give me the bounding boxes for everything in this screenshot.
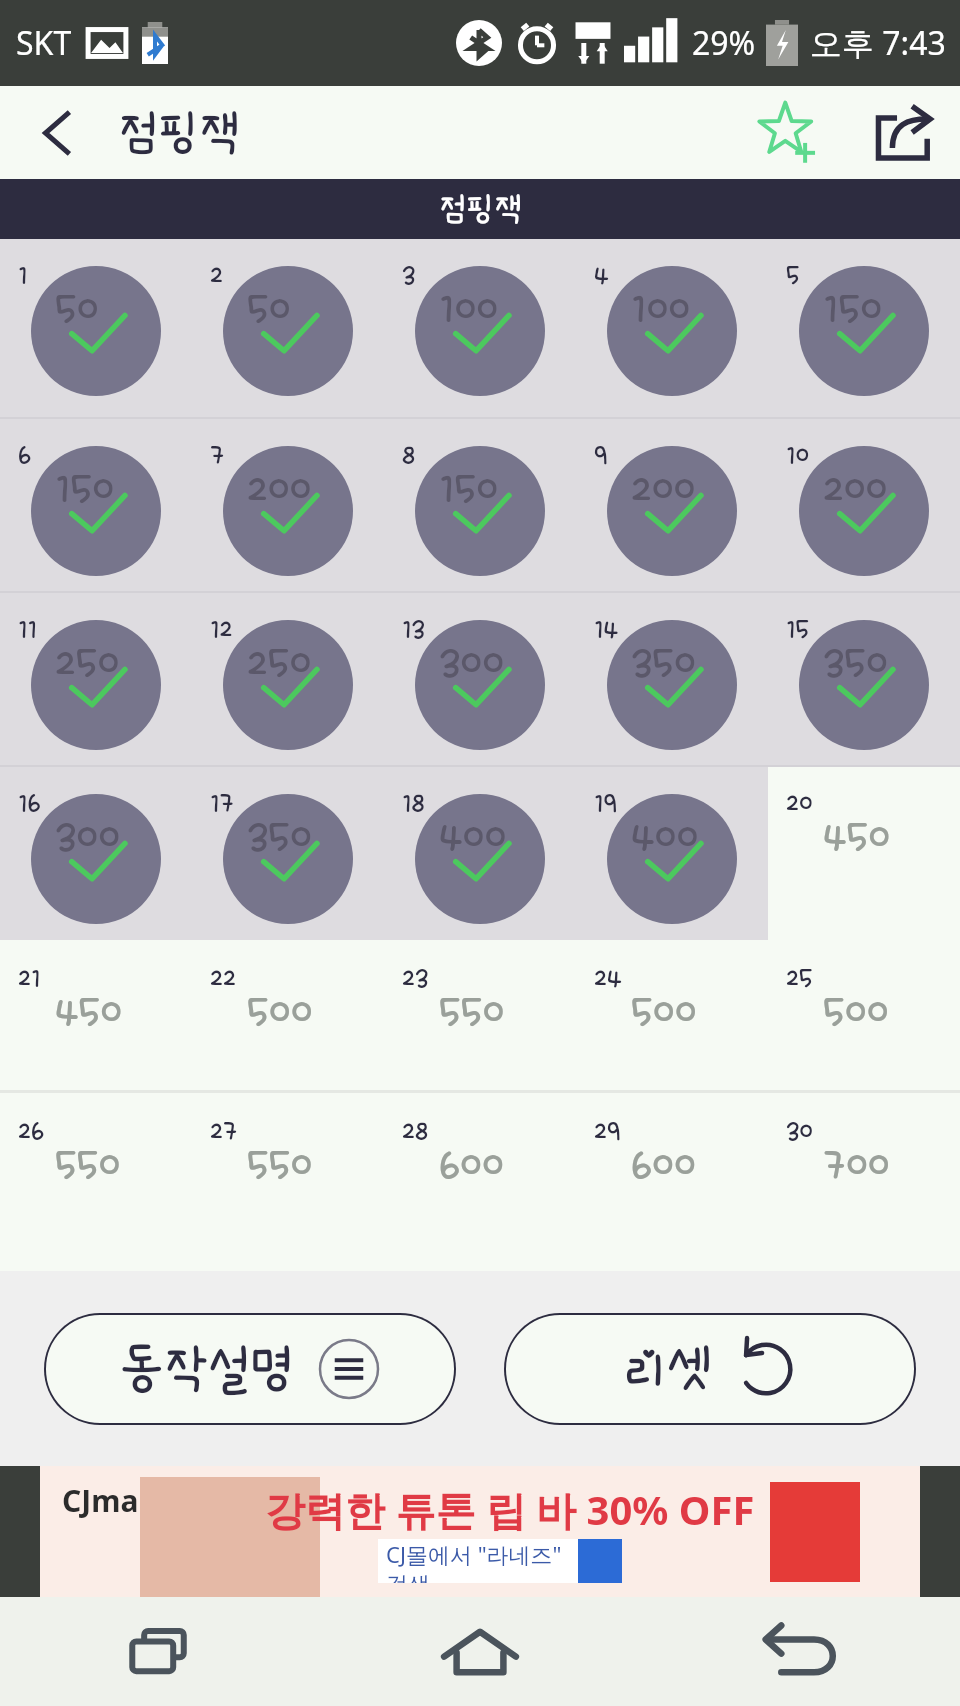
button[interactable]: 13	[384, 593, 576, 765]
button[interactable]: 15	[768, 593, 960, 765]
button[interactable]: 19	[576, 767, 768, 940]
button[interactable]: 14	[576, 593, 768, 765]
staticText: 23	[402, 964, 429, 994]
staticText: 28	[402, 1117, 429, 1147]
staticText: 점핑잭	[439, 192, 522, 226]
button[interactable]: 1	[0, 239, 192, 417]
staticText: 8	[402, 441, 416, 471]
staticText: 9	[594, 441, 608, 471]
button[interactable]: 12	[192, 593, 384, 765]
staticText: 24	[594, 964, 622, 994]
staticText: 700	[823, 1141, 890, 1189]
staticText: 7	[210, 441, 225, 471]
button[interactable]: 17	[192, 767, 384, 940]
staticText: 29	[594, 1117, 621, 1147]
staticText: 27	[210, 1117, 238, 1147]
staticText: 400	[439, 813, 507, 861]
staticText: 15	[786, 615, 810, 645]
staticText: 300	[55, 813, 121, 861]
staticText: 350	[247, 813, 312, 861]
button[interactable]: 4	[576, 239, 768, 417]
staticText: CJmall	[62, 1480, 157, 1521]
staticText: 350	[823, 639, 888, 687]
button[interactable]: 20	[768, 767, 960, 940]
button[interactable]: 2	[192, 239, 384, 417]
button[interactable]: 18	[384, 767, 576, 940]
button[interactable]: 리셋	[504, 1313, 916, 1425]
button[interactable]: 21	[0, 940, 192, 1090]
staticText: 200	[823, 465, 888, 513]
button[interactable]: 6	[0, 419, 192, 591]
staticText: 2	[210, 261, 223, 291]
staticText: 30	[786, 1117, 813, 1147]
staticText: 11	[18, 615, 38, 645]
staticText: 100	[439, 285, 499, 333]
staticText: 리셋	[623, 1342, 710, 1396]
staticText: 14	[594, 615, 619, 645]
staticText: 450	[55, 988, 123, 1036]
staticText: 350	[631, 639, 696, 687]
staticText: 3	[402, 261, 416, 291]
button[interactable]: 30	[768, 1093, 960, 1271]
staticText: 500	[631, 988, 697, 1036]
staticText: 150	[823, 285, 883, 333]
staticText: 500	[823, 988, 889, 1036]
staticText: 550	[439, 988, 505, 1036]
staticText: 22	[210, 964, 236, 994]
button[interactable]: 8	[384, 419, 576, 591]
staticText: 20	[786, 789, 813, 819]
staticText: 동작설명	[120, 1342, 294, 1396]
button[interactable]: Back	[0, 86, 118, 179]
staticText: 100	[631, 285, 691, 333]
staticText: 400	[631, 813, 699, 861]
staticText: 600	[631, 1141, 696, 1189]
button[interactable]: Home	[320, 1597, 640, 1706]
staticText: 26	[18, 1117, 45, 1147]
staticText: SKT	[16, 21, 72, 65]
staticText: 450	[823, 813, 891, 861]
button[interactable]: 29	[576, 1093, 768, 1271]
staticText: 13	[402, 615, 425, 645]
button[interactable]: 동작설명	[44, 1313, 456, 1425]
staticText: CJ몰에서 "라네즈" 검색	[386, 1539, 570, 1583]
button[interactable]: 28	[384, 1093, 576, 1271]
staticText: 150	[55, 465, 115, 513]
button[interactable]: Add to favorites	[730, 86, 848, 179]
button[interactable]: 10	[768, 419, 960, 591]
staticText: 550	[55, 1141, 121, 1189]
staticText: 200	[247, 465, 312, 513]
button[interactable]: 22	[192, 940, 384, 1090]
button[interactable]: 27	[192, 1093, 384, 1271]
staticText: 300	[439, 639, 505, 687]
button[interactable]: 24	[576, 940, 768, 1090]
staticText: 5	[786, 261, 800, 291]
staticText: 500	[247, 988, 313, 1036]
button[interactable]: 25	[768, 940, 960, 1090]
button[interactable]: Share	[848, 86, 960, 179]
staticText: 17	[210, 789, 234, 819]
staticText: 1	[18, 261, 28, 291]
button[interactable]: 11	[0, 593, 192, 765]
staticText: 600	[439, 1141, 504, 1189]
button[interactable]: 26	[0, 1093, 192, 1271]
staticText: 150	[439, 465, 499, 513]
button[interactable]: Back	[640, 1597, 960, 1706]
button[interactable]: 5	[768, 239, 960, 417]
staticText: 50	[55, 285, 99, 333]
button[interactable]: 3	[384, 239, 576, 417]
button[interactable]: 7	[192, 419, 384, 591]
button[interactable]: Advertisement	[0, 1466, 960, 1597]
staticText: 4	[594, 261, 609, 291]
staticText: 오후 7:43	[810, 21, 946, 65]
staticText: 550	[247, 1141, 313, 1189]
staticText: 50	[247, 285, 291, 333]
staticText: 250	[55, 639, 120, 687]
button[interactable]: 16	[0, 767, 192, 940]
button[interactable]: 9	[576, 419, 768, 591]
button[interactable]: Recent apps	[0, 1597, 320, 1706]
staticText: 29%	[692, 21, 756, 65]
staticText: 점핑잭	[118, 108, 239, 158]
button[interactable]: 23	[384, 940, 576, 1090]
staticText: 19	[594, 789, 617, 819]
staticText: 12	[210, 615, 233, 645]
